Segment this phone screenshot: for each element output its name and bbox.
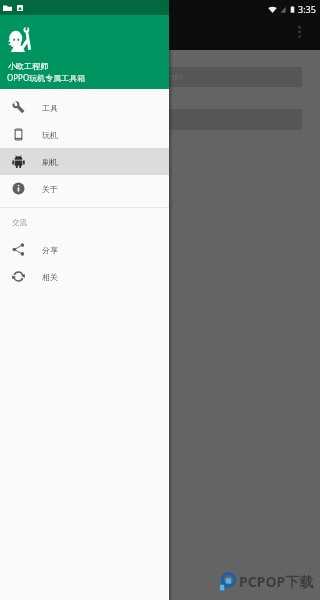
button[interactable]: More options — [287, 20, 311, 44]
staticText: 分享 — [42, 245, 58, 255]
staticText: OPPO玩机专属工具箱 — [7, 72, 86, 83]
button[interactable]: BATTERY — [12, 67, 302, 87]
button[interactable]: 相关 — [0, 263, 169, 290]
button[interactable]: 关于 — [0, 175, 169, 202]
button[interactable]: 刷机 — [0, 148, 169, 175]
button[interactable] — [12, 109, 302, 130]
staticText: 刷机 — [42, 157, 58, 167]
staticText: 交流 — [12, 218, 27, 227]
staticText: PCPOP下载 — [239, 572, 314, 591]
staticText: 小欧工程师 — [8, 61, 48, 71]
staticText: BATTERY — [154, 73, 184, 83]
button[interactable]: 玩机 — [0, 121, 169, 148]
staticText: 玩机 — [42, 130, 58, 140]
staticText: 相关 — [42, 272, 58, 282]
staticText: 工具 — [42, 103, 58, 113]
staticText: 关于 — [42, 184, 58, 194]
staticText: 3:35 — [298, 3, 316, 15]
button[interactable]: 分享 — [0, 236, 169, 263]
button[interactable]: 工具 — [0, 94, 169, 121]
